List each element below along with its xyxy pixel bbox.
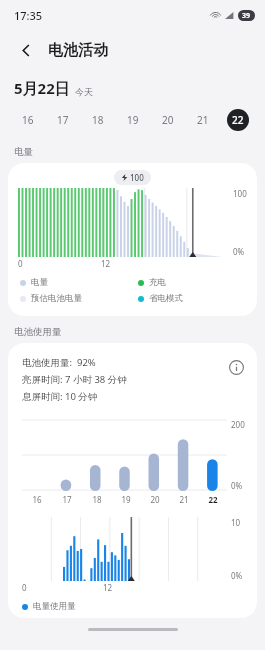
staticText: 16 bbox=[22, 113, 34, 127]
staticText: 17 bbox=[62, 494, 72, 505]
staticText: 电量 bbox=[14, 146, 33, 158]
staticText: 18 bbox=[92, 494, 102, 505]
staticText: 17 bbox=[57, 113, 69, 127]
staticText: 今天 bbox=[75, 86, 93, 97]
button[interactable]: 17 bbox=[45, 102, 80, 138]
staticText: 0 bbox=[22, 582, 27, 593]
staticText: 省电模式 bbox=[149, 293, 183, 304]
staticText: 18 bbox=[92, 113, 104, 127]
button[interactable]: Back bbox=[12, 36, 40, 64]
button[interactable]: Info bbox=[225, 356, 247, 378]
staticText: 20 bbox=[162, 113, 174, 127]
staticText: 22 bbox=[208, 494, 218, 505]
staticText: 电池活动 bbox=[48, 41, 108, 60]
staticText: 亮屏时间: 7 小时 38 分钟 bbox=[22, 373, 127, 386]
staticText: 电量使用量 bbox=[33, 601, 76, 612]
staticText: 0% bbox=[231, 480, 243, 491]
staticText: 电池使用量: 92% bbox=[22, 356, 96, 369]
button[interactable]: 16 bbox=[10, 102, 45, 138]
staticText: 39 bbox=[242, 11, 251, 21]
button[interactable]: 20 bbox=[150, 102, 185, 138]
staticText: 预估电池电量 bbox=[31, 293, 82, 304]
staticText: 0 bbox=[18, 258, 23, 269]
staticText: 充电 bbox=[149, 277, 166, 288]
staticText: 200 bbox=[231, 419, 245, 430]
staticText: 0% bbox=[233, 246, 245, 257]
staticText: 21 bbox=[179, 494, 189, 505]
staticText: 100 bbox=[130, 172, 144, 183]
staticText: 20 bbox=[150, 494, 160, 505]
button[interactable]: 22 bbox=[220, 102, 255, 138]
button[interactable]: 电池使用量: 92% bbox=[8, 343, 257, 618]
staticText: 17:35 bbox=[14, 8, 43, 23]
button[interactable]: 18 bbox=[80, 102, 115, 138]
staticText: 21 bbox=[197, 113, 209, 127]
staticText: 5月22日 bbox=[14, 78, 70, 98]
button[interactable]: 19 bbox=[115, 102, 150, 138]
staticText: 电池使用量 bbox=[14, 326, 62, 338]
staticText: 19 bbox=[121, 494, 131, 505]
staticText: 100 bbox=[233, 188, 247, 199]
staticText: 12 bbox=[101, 258, 111, 269]
staticText: 19 bbox=[127, 113, 139, 127]
button[interactable]: 100 bbox=[8, 163, 257, 316]
staticText: 22 bbox=[232, 113, 244, 127]
staticText: 电量 bbox=[31, 277, 48, 288]
staticText: 12 bbox=[103, 582, 113, 593]
staticText: 息屏时间: 10 分钟 bbox=[22, 390, 98, 403]
staticText: 10 bbox=[231, 517, 241, 528]
staticText: 0% bbox=[231, 570, 243, 581]
staticText: 16 bbox=[32, 494, 42, 505]
button[interactable]: 21 bbox=[185, 102, 220, 138]
